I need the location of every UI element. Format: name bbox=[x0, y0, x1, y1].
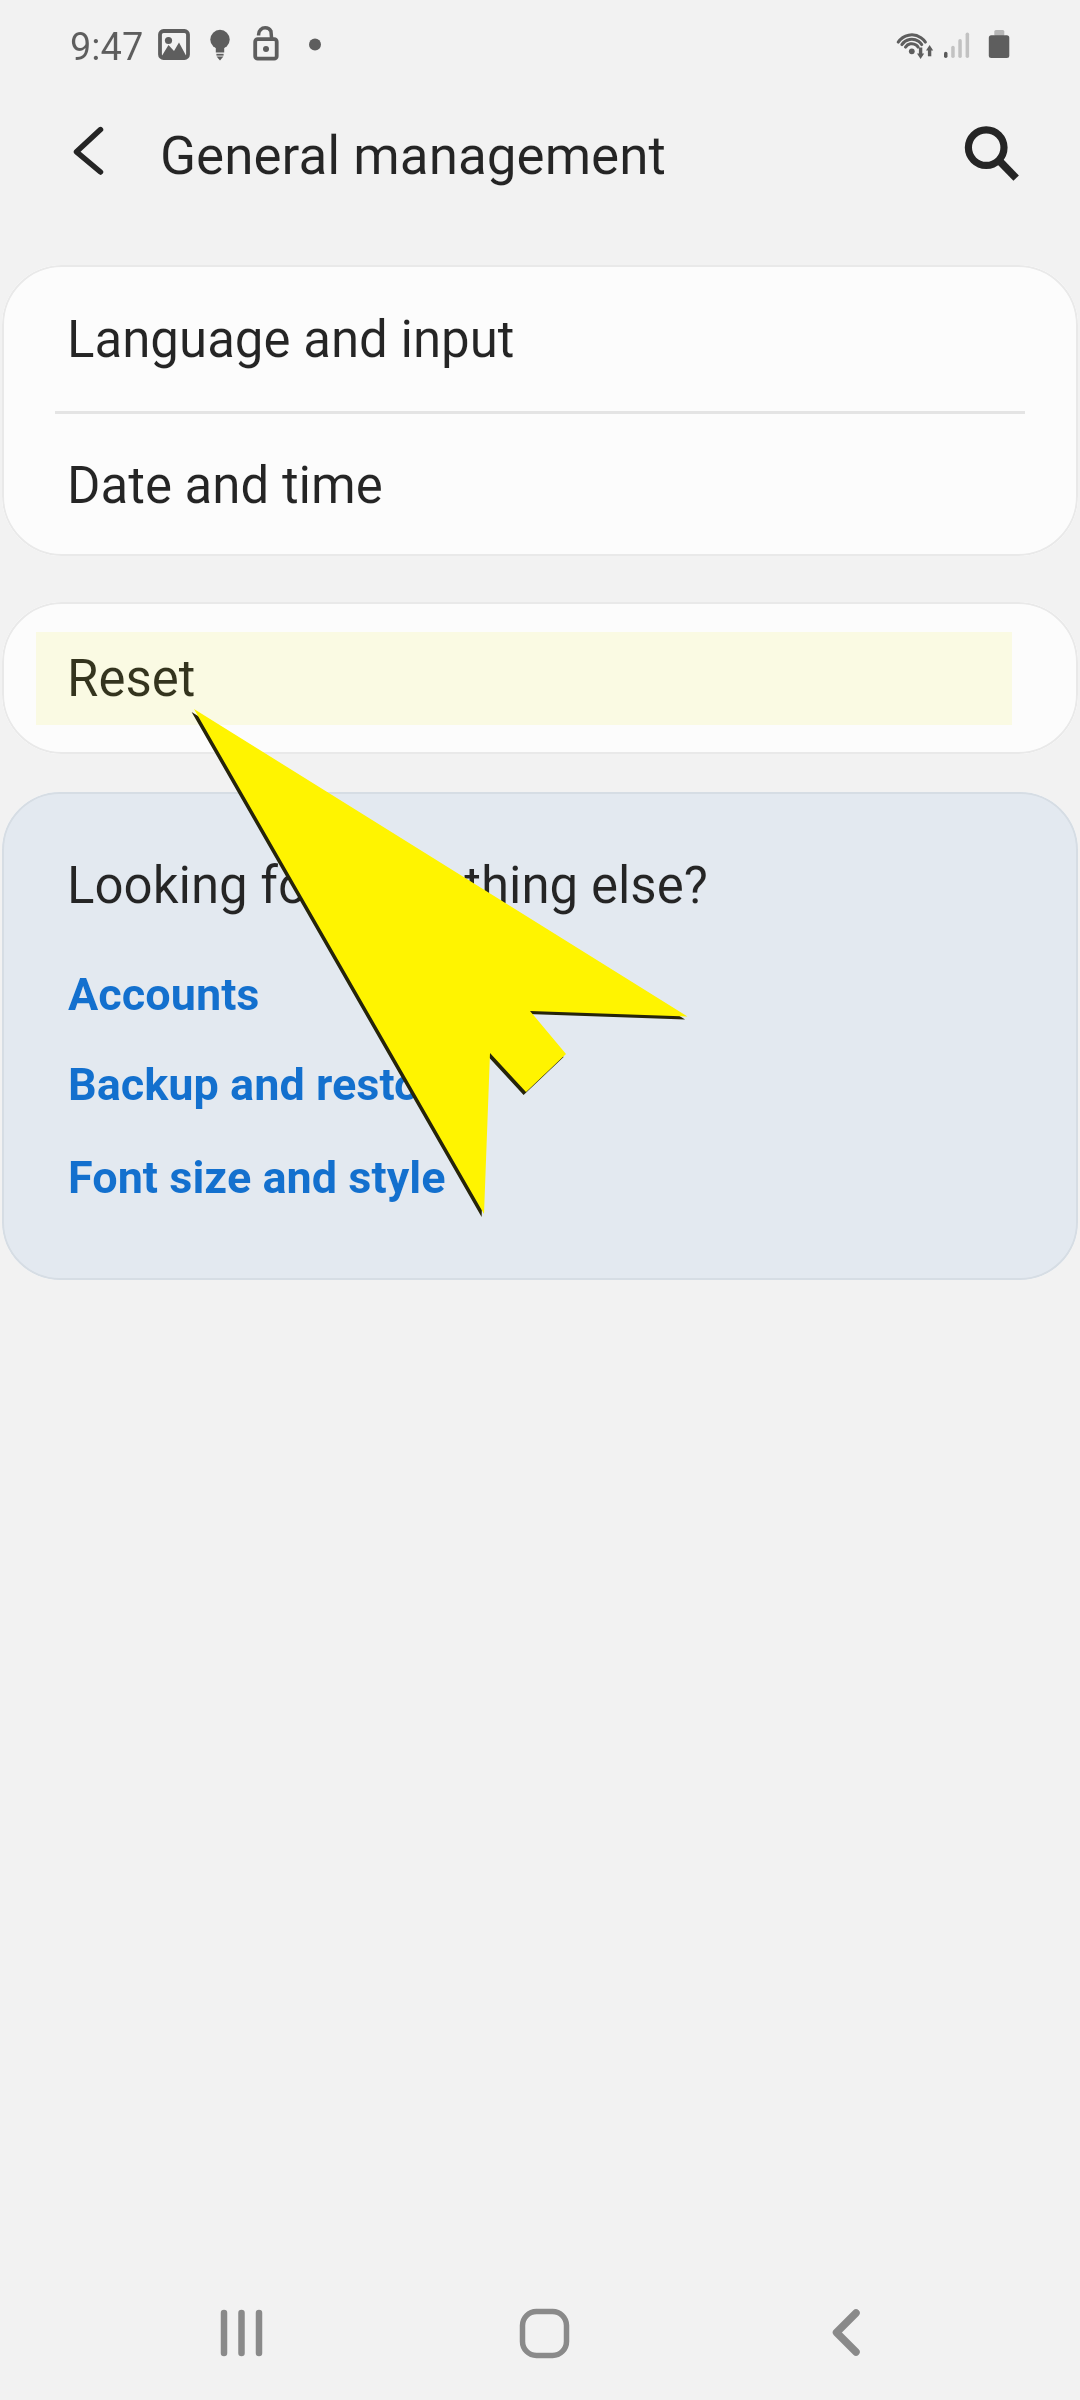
staticText: Accounts bbox=[68, 968, 260, 1021]
staticText: Backup and restore bbox=[68, 1058, 460, 1111]
button[interactable]: Language and input bbox=[2, 265, 1078, 411]
staticText: Date and time bbox=[67, 456, 383, 516]
button[interactable]: Backup and restore bbox=[56, 1054, 472, 1115]
button[interactable]: Home bbox=[480, 2280, 600, 2400]
button[interactable]: Back bbox=[38, 110, 138, 210]
staticText: Reset bbox=[67, 649, 196, 709]
staticText: 9:47 bbox=[70, 25, 144, 70]
button[interactable]: Reset bbox=[2, 602, 1078, 754]
staticText: Font size and style bbox=[68, 1151, 446, 1204]
staticText: Looking for something else? bbox=[67, 856, 708, 916]
button[interactable]: Date and time bbox=[2, 414, 1078, 556]
button[interactable]: Font size and style bbox=[56, 1147, 458, 1208]
button[interactable]: Search bbox=[940, 106, 1040, 206]
button[interactable]: Recents bbox=[179, 2280, 299, 2400]
staticText: General management bbox=[160, 125, 666, 187]
button[interactable]: Back bbox=[795, 2280, 915, 2400]
staticText: Language and input bbox=[67, 310, 515, 370]
button[interactable]: Accounts bbox=[56, 964, 272, 1025]
